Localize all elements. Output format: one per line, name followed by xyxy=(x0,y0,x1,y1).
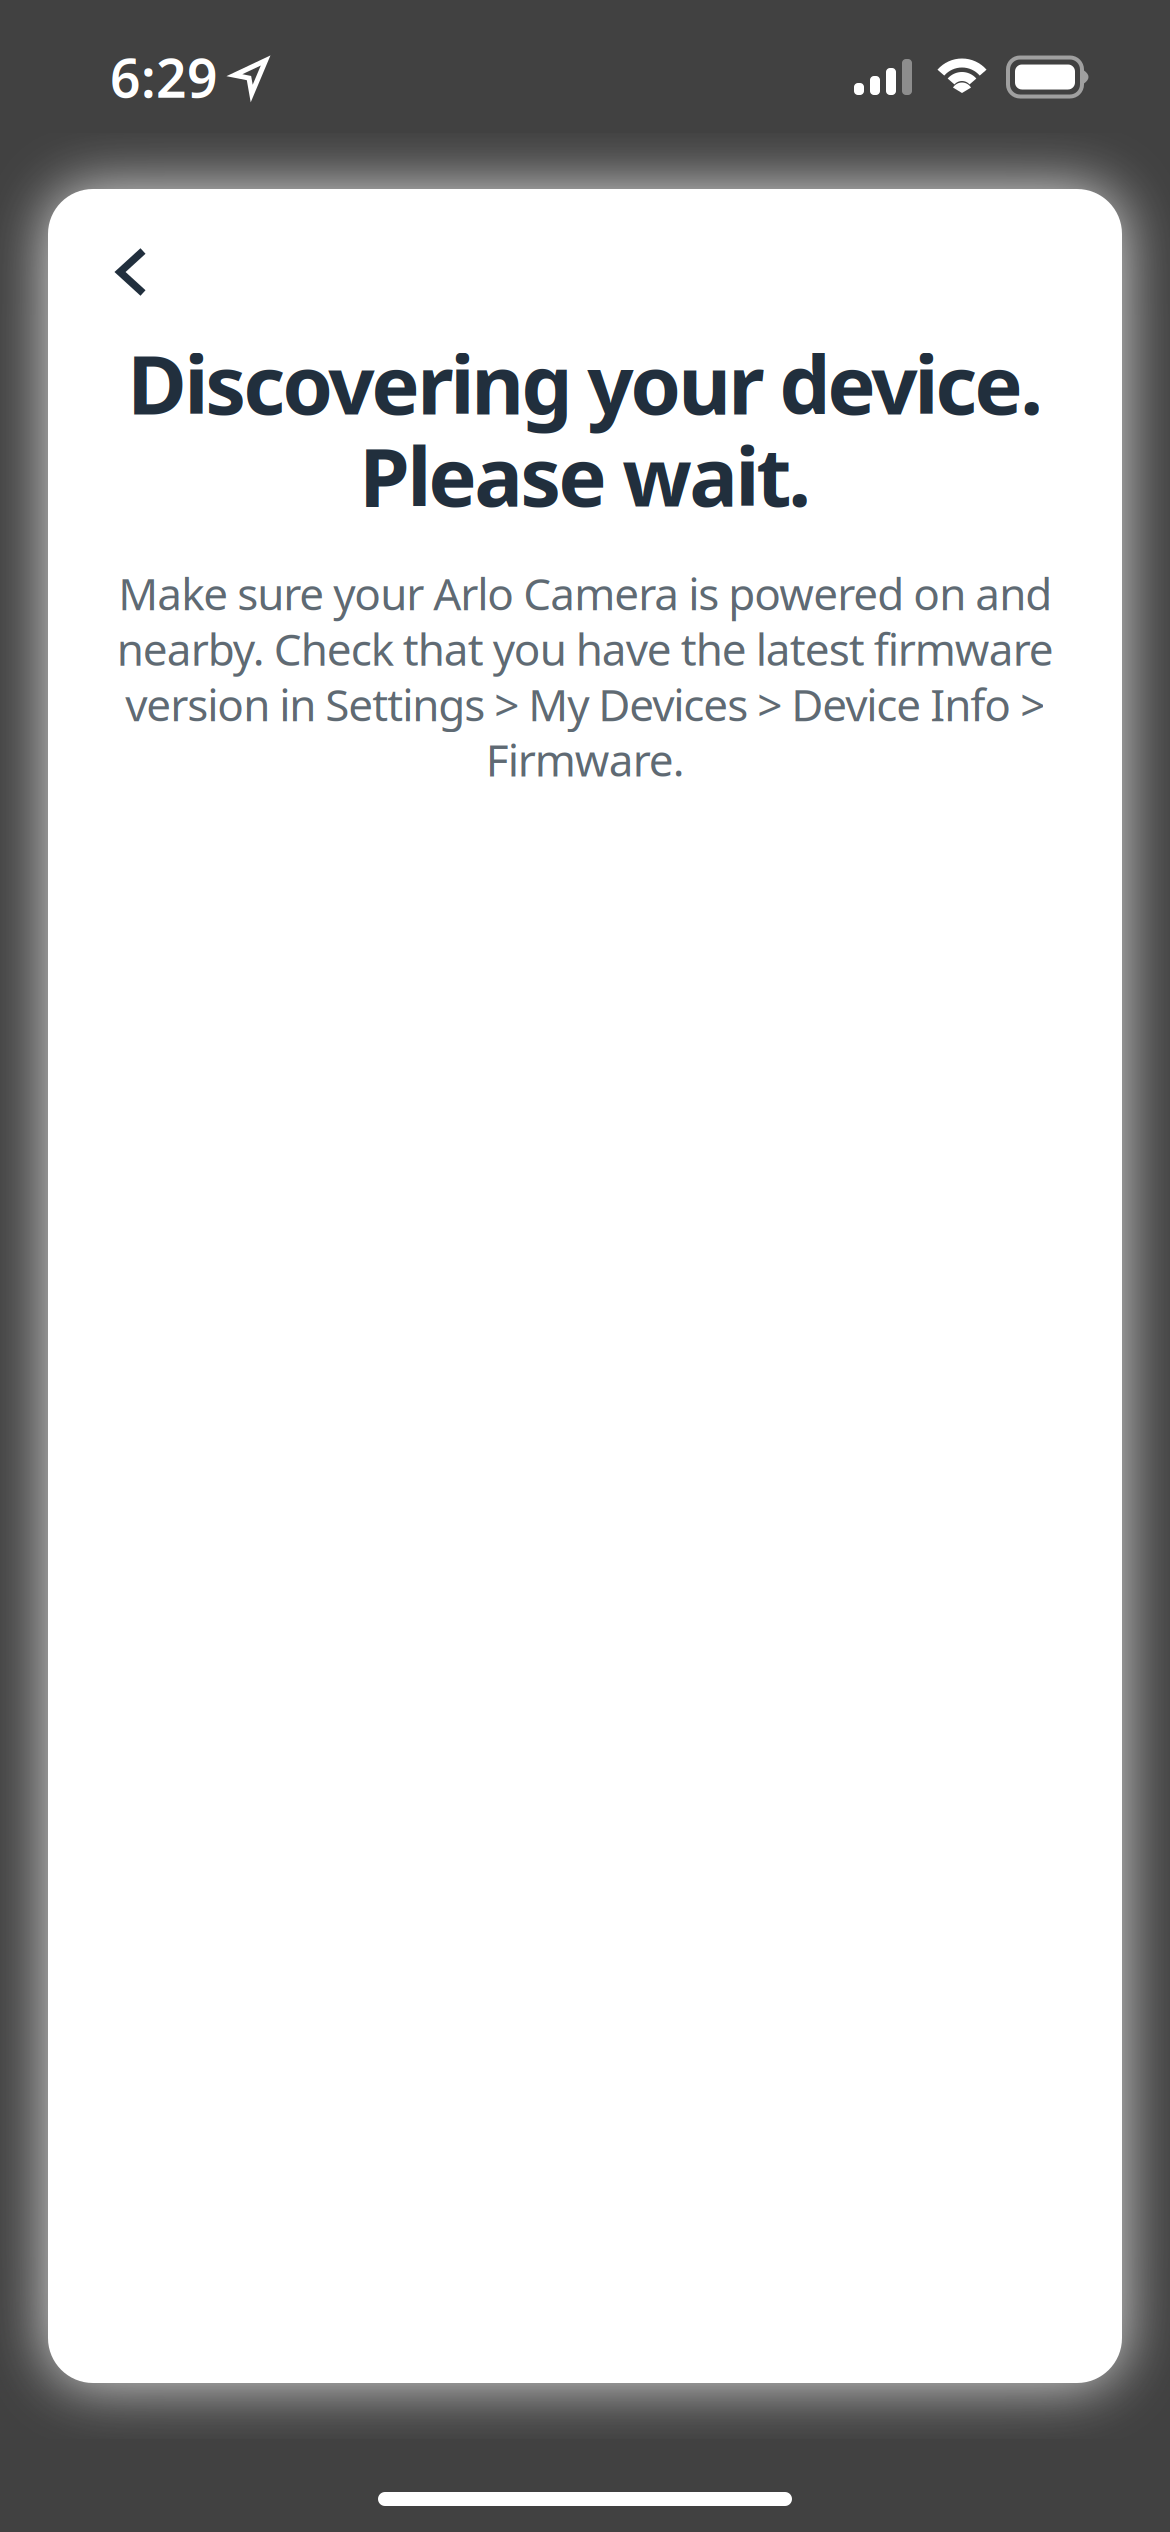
staticText: Discovering your device. Please wait. xyxy=(127,329,1043,529)
staticText: 6:29 xyxy=(110,42,218,112)
button[interactable]: Back xyxy=(48,189,143,293)
staticText: Make sure your Arlo Camera is powered on… xyxy=(116,564,1053,789)
